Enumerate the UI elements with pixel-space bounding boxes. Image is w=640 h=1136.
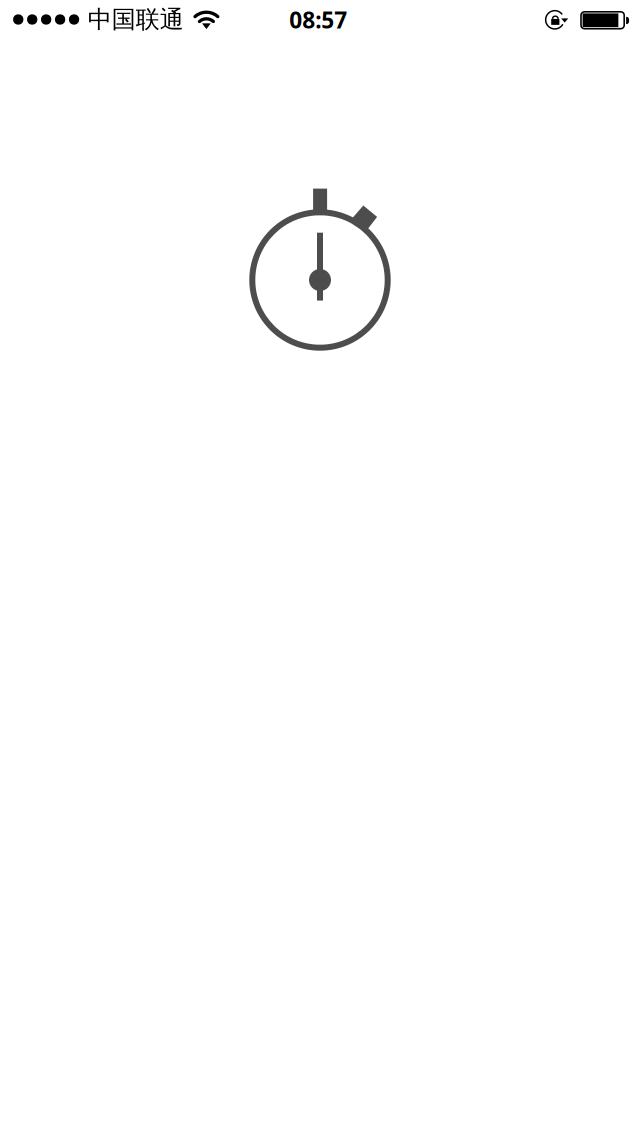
staticText: 中国联通	[88, 5, 184, 34]
staticText: 08:57	[289, 5, 347, 35]
